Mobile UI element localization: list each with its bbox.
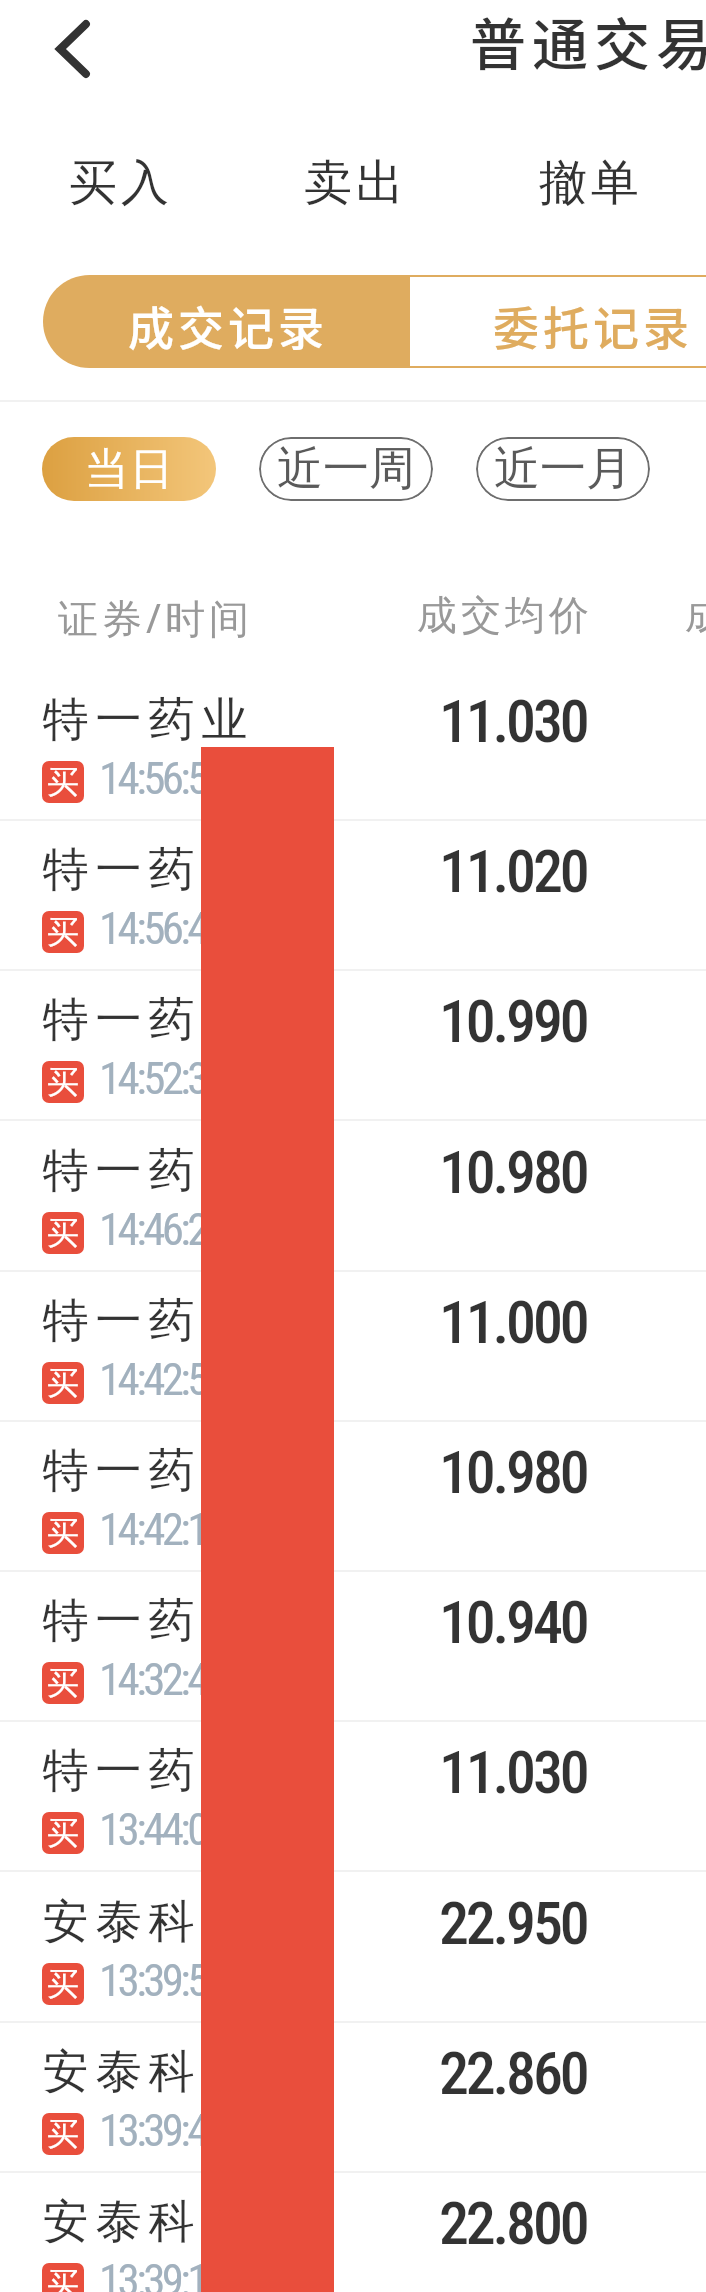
staticText: 安泰科技 — [39, 2043, 251, 2101]
staticText: 当日 — [84, 442, 174, 497]
staticText: 22.950 — [439, 1888, 587, 1958]
staticText: 22.800 — [439, 2188, 587, 2258]
button[interactable]: 特一药业 — [0, 971, 706, 1121]
staticText: 14:42:5 — [99, 1353, 206, 1406]
staticText: 买 — [47, 1663, 79, 1703]
button[interactable]: 当日 — [42, 437, 216, 501]
staticText: 14:52:3 — [99, 1052, 206, 1105]
staticText: 14:32:4 — [99, 1653, 206, 1706]
button[interactable]: Back — [33, 9, 113, 89]
staticText: 成交均价 — [415, 590, 591, 640]
staticText: 近一周 — [277, 440, 415, 498]
button[interactable]: 特一药业 — [0, 1272, 706, 1422]
staticText: 13:39:1 — [99, 2254, 206, 2292]
staticText: 卖出 — [302, 153, 406, 213]
staticText: 买 — [47, 1213, 79, 1253]
staticText: 14:42:1 — [99, 1503, 206, 1556]
button[interactable]: 成交记录 — [43, 275, 408, 368]
staticText: 特一药业 — [39, 1292, 251, 1350]
staticText: 委托记录 — [491, 292, 691, 359]
staticText: 普通交易 — [467, 0, 706, 81]
staticText: 买 — [47, 1813, 79, 1853]
staticText: 10.990 — [439, 986, 587, 1056]
button[interactable]: 特一药业 — [0, 821, 706, 971]
staticText: 特一药业 — [39, 1742, 251, 1800]
staticText: 10.980 — [439, 1137, 587, 1207]
button[interactable]: 安泰科技 — [0, 1873, 706, 2023]
staticText: 11.030 — [439, 1737, 587, 1807]
staticText: 买 — [47, 2114, 79, 2154]
staticText: 成交 — [683, 590, 706, 640]
button[interactable]: 近一月 — [476, 437, 650, 501]
button[interactable]: 特一药业 — [0, 1722, 706, 1872]
staticText: 11.000 — [439, 1287, 587, 1357]
button[interactable]: 特一药业 — [0, 671, 706, 821]
staticText: 特一药业 — [39, 991, 251, 1049]
button[interactable]: 卖出 — [302, 140, 437, 226]
staticText: 成交记录 — [126, 292, 326, 359]
staticText: 10.980 — [439, 1437, 587, 1507]
staticText: 特一药业 — [39, 1442, 251, 1500]
staticText: 11.020 — [439, 836, 587, 906]
staticText: 11.030 — [439, 686, 587, 756]
staticText: 安泰科技 — [39, 1893, 251, 1951]
button[interactable]: 安泰科技 — [0, 2023, 706, 2173]
button[interactable]: 委托记录 — [408, 275, 706, 368]
staticText: 特一药业 — [39, 1592, 251, 1650]
staticText: 买 — [47, 1964, 79, 2004]
staticText: 13:44:0 — [99, 1803, 206, 1856]
staticText: 14:56:4 — [99, 902, 206, 955]
staticText: 买入 — [67, 153, 171, 213]
staticText: 10.940 — [439, 1587, 587, 1657]
staticText: 买 — [47, 1062, 79, 1102]
button[interactable]: 近一周 — [259, 437, 433, 501]
staticText: 安泰科技 — [39, 2193, 251, 2251]
staticText: 14:46:2 — [99, 1203, 206, 1256]
staticText: 撤单 — [537, 153, 641, 213]
staticText: 13:39:5 — [99, 1954, 206, 2007]
staticText: 买 — [47, 1513, 79, 1553]
staticText: 买 — [47, 2264, 79, 2292]
staticText: 特一药业 — [39, 1142, 251, 1200]
staticText: 14:56:5 — [99, 752, 206, 805]
staticText: 22.860 — [439, 2038, 587, 2108]
staticText: 特一药业 — [39, 691, 251, 749]
button[interactable]: 撤单 — [537, 140, 672, 226]
button[interactable]: 安泰科技 — [0, 2173, 706, 2292]
staticText: 买 — [47, 762, 79, 802]
staticText: 13:39:4 — [99, 2104, 206, 2157]
staticText: 买 — [47, 1363, 79, 1403]
button[interactable]: 买入 — [67, 140, 202, 226]
staticText: 证券/时间 — [58, 590, 253, 645]
staticText: 特一药业 — [39, 841, 251, 899]
staticText: 近一月 — [494, 440, 632, 498]
staticText: 买 — [47, 912, 79, 952]
button[interactable]: 特一药业 — [0, 1122, 706, 1272]
button[interactable]: 特一药业 — [0, 1572, 706, 1722]
button[interactable]: 特一药业 — [0, 1422, 706, 1572]
